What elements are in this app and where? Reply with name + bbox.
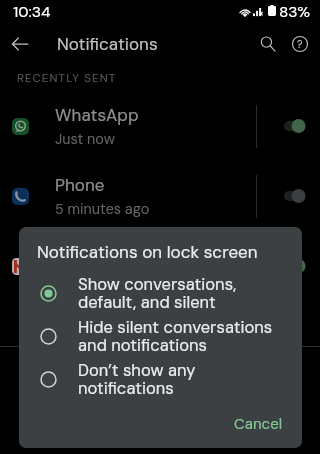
staticText: Just now xyxy=(55,130,115,149)
staticText: 83% xyxy=(279,2,311,22)
button[interactable]: Search xyxy=(252,28,284,60)
button[interactable]: Toggle Phone notifications xyxy=(257,161,320,231)
button[interactable]: Cancel xyxy=(223,406,294,442)
staticText: 5 minutes ago xyxy=(55,200,150,219)
staticText: 12 minutes ago xyxy=(55,270,154,289)
staticText: WhatsApp xyxy=(55,104,139,126)
button[interactable]: See all from last 7 days xyxy=(0,301,320,346)
button[interactable]: WhatsApp xyxy=(0,91,320,161)
button[interactable]: Hide silent conversations and notificati… xyxy=(19,315,302,358)
button[interactable]: Toggle WhatsApp notifications xyxy=(257,91,320,161)
button[interactable]: Don’t show any notifications xyxy=(19,358,302,401)
staticText: Notification history xyxy=(55,365,198,386)
button[interactable]: Notification history xyxy=(0,347,320,403)
staticText: RECENTLY SENT xyxy=(17,71,117,86)
staticText: Cancel xyxy=(234,414,283,434)
staticText: ? xyxy=(297,38,303,51)
button[interactable]: Conversations xyxy=(0,403,320,454)
staticText: Show conversations, default, and silent xyxy=(78,274,237,313)
staticText: Notifications xyxy=(57,33,158,55)
button[interactable]: Help xyxy=(284,28,316,60)
button[interactable]: Show conversations, default, and silent xyxy=(19,272,302,315)
staticText: Don’t show any notifications xyxy=(78,360,196,399)
staticText: See all from last 7 days xyxy=(55,314,216,334)
staticText: Hide silent conversations and notificati… xyxy=(78,317,273,356)
staticText: Phone xyxy=(55,174,105,196)
staticText: Gmail xyxy=(55,244,101,266)
staticText: 10:34 xyxy=(13,2,51,22)
button[interactable]: Gmail xyxy=(0,231,320,301)
button[interactable]: Phone xyxy=(0,161,320,231)
button[interactable]: Toggle Gmail notifications xyxy=(257,231,320,301)
button[interactable]: Back xyxy=(4,28,36,60)
staticText: Notifications on lock screen xyxy=(37,241,258,263)
